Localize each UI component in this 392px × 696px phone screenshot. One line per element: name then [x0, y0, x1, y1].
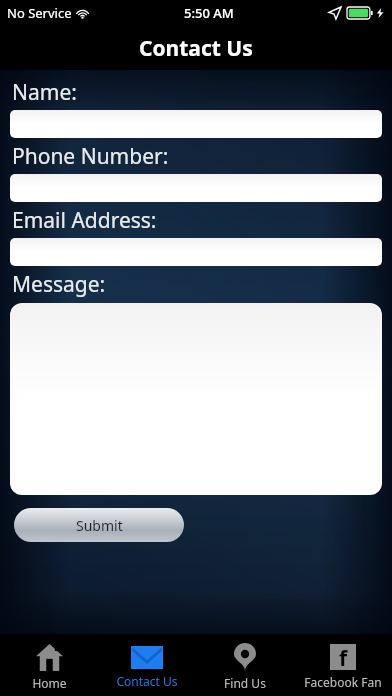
staticText: Contact Us — [116, 673, 178, 689]
button[interactable] — [10, 110, 382, 138]
staticText: No Service — [7, 4, 72, 22]
staticText: Phone Number: — [12, 142, 169, 171]
button[interactable]: Contact Us — [98, 634, 196, 696]
staticText: Message: — [12, 270, 106, 299]
other: Home — [36, 644, 63, 671]
button[interactable]: Facebook Fan — [294, 634, 392, 696]
button[interactable] — [10, 303, 382, 495]
button[interactable]: Home — [0, 634, 98, 696]
button[interactable] — [10, 174, 382, 202]
staticText: Contact Us — [139, 34, 253, 63]
staticText: Name: — [12, 78, 77, 107]
staticText: Facebook Fan — [304, 674, 382, 690]
button[interactable]: Submit — [14, 508, 184, 542]
staticText: Find Us — [224, 675, 266, 691]
button[interactable] — [10, 238, 382, 266]
staticText: Email Address: — [12, 206, 157, 235]
other: Find Us — [234, 643, 256, 671]
staticText: Submit — [76, 516, 123, 535]
staticText: f — [339, 644, 348, 670]
other: Contact Us — [131, 646, 163, 669]
staticText: Home — [32, 675, 67, 691]
staticText: 5:50 AM — [184, 4, 234, 22]
button[interactable]: Find Us — [196, 634, 294, 696]
other: Facebook Fan — [330, 644, 356, 670]
